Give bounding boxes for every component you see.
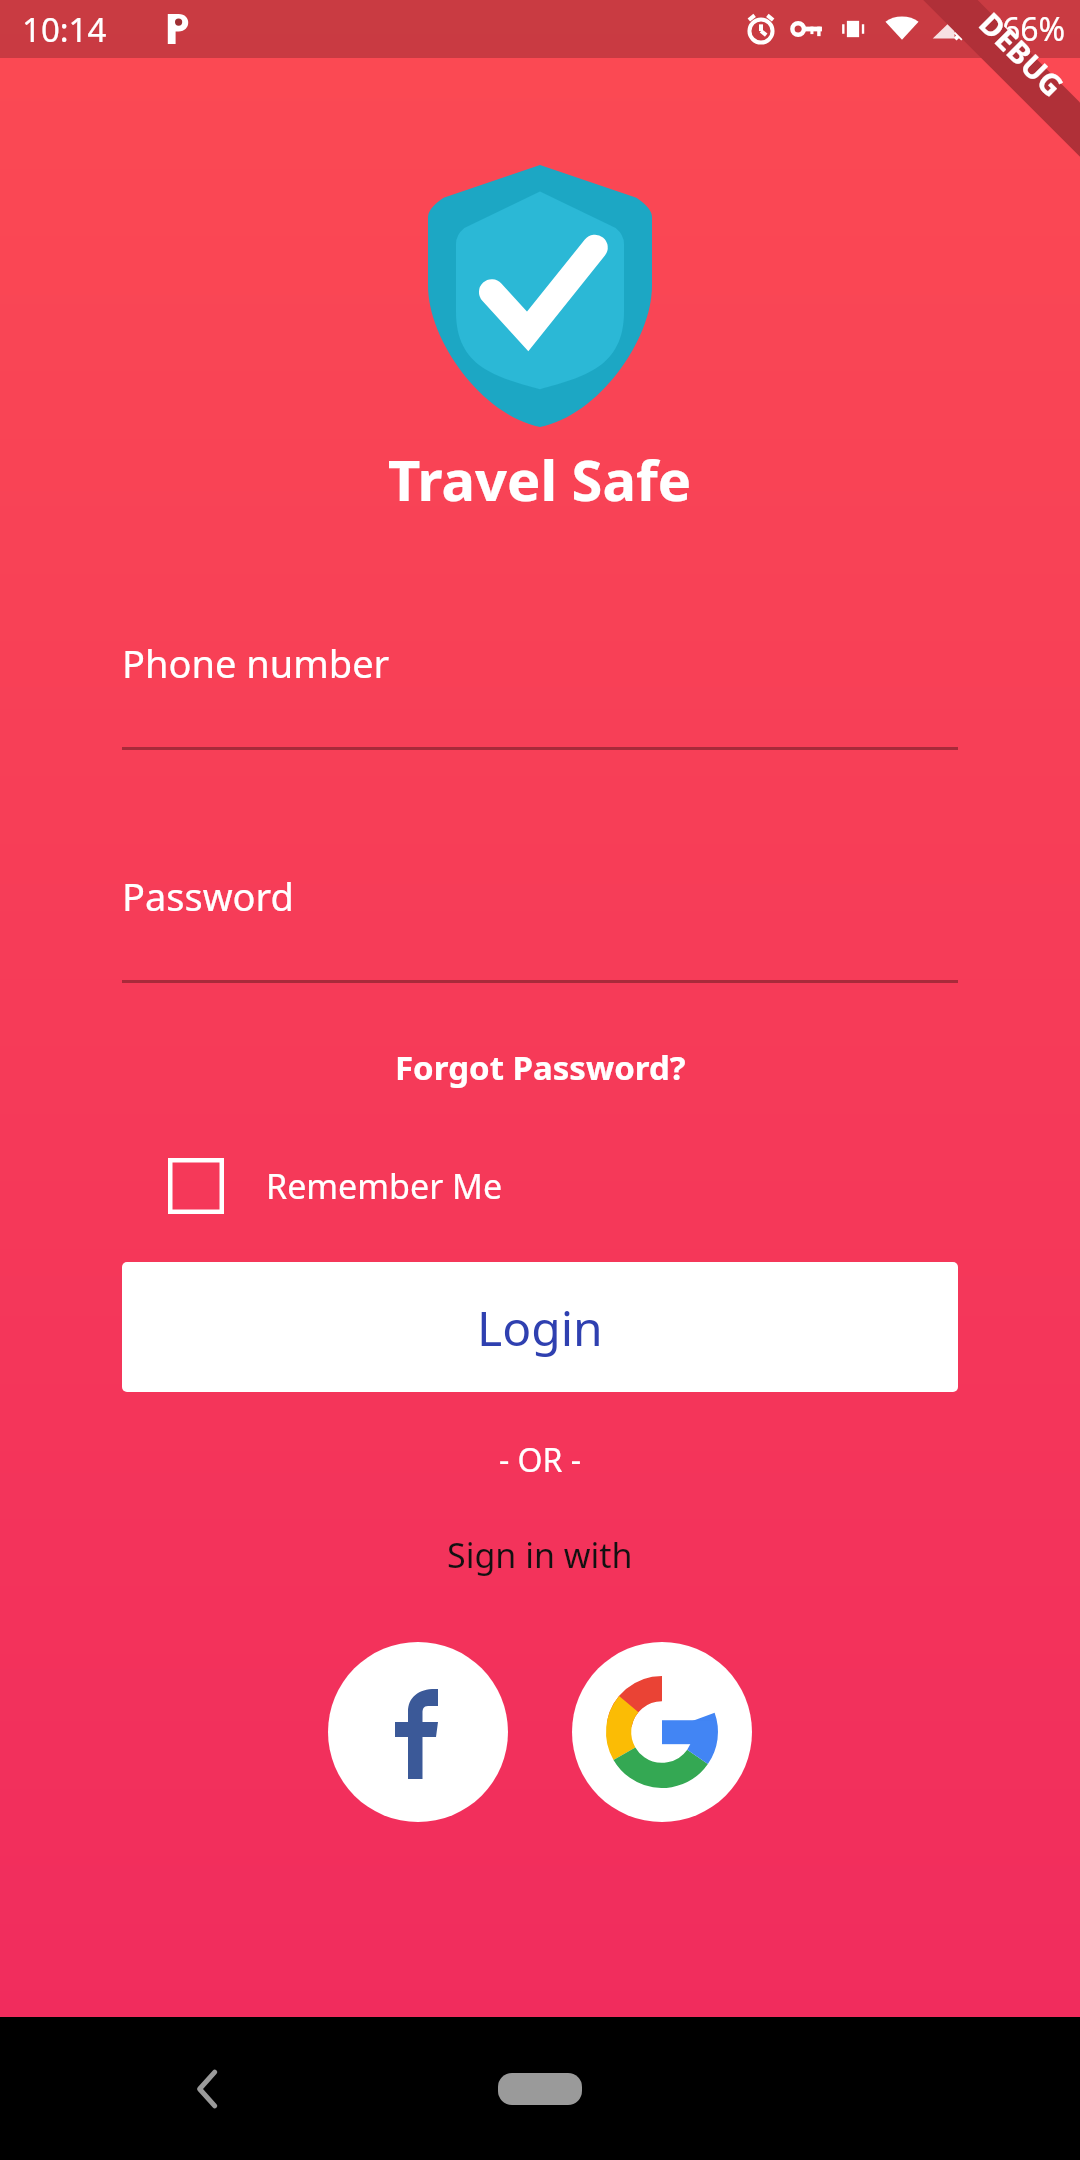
staticText: Login — [477, 1295, 603, 1360]
staticText: Phone number — [122, 637, 390, 689]
button[interactable]: Forgot Password? — [0, 1035, 1080, 1100]
staticText: Forgot Password? — [395, 1045, 686, 1090]
staticText: Remember Me — [266, 1163, 503, 1209]
button[interactable]: Home — [480, 2058, 600, 2120]
staticText: Travel Safe — [388, 441, 692, 517]
button[interactable]: Sign in with Google — [572, 1642, 752, 1822]
staticText: 66% — [1002, 7, 1066, 51]
button[interactable]: Password — [122, 870, 958, 983]
button[interactable]: Back — [160, 2041, 256, 2137]
button[interactable]: Phone number — [122, 637, 958, 750]
staticText: DEBUG — [971, 3, 1073, 106]
staticText: Sign in with — [447, 1532, 633, 1578]
staticText: Password — [122, 870, 294, 922]
staticText: - OR - — [499, 1438, 582, 1482]
staticText: 10:14 — [22, 7, 107, 52]
button[interactable]: Remember Me — [168, 1158, 1080, 1214]
button[interactable]: Sign in with Facebook — [328, 1642, 508, 1822]
button[interactable]: Login — [122, 1262, 958, 1392]
